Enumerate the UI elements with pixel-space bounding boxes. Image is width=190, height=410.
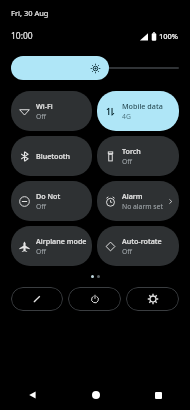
button[interactable]: Alarm — [97, 181, 179, 221]
staticText: Airplane mode — [36, 236, 87, 246]
staticText: Mobile data — [122, 101, 163, 111]
staticText: Alarm — [122, 191, 143, 201]
staticText: 10:00 — [11, 30, 33, 42]
staticText: Bluetooth — [36, 151, 71, 161]
staticText: 4G — [122, 112, 131, 121]
button[interactable]: Do Not Disturb — [11, 181, 92, 221]
staticText: Torch — [122, 146, 141, 156]
button[interactable]: Wi-Fi — [11, 91, 92, 131]
button[interactable]: Power — [68, 287, 121, 311]
button[interactable]: Brightness — [11, 56, 179, 80]
button[interactable]: Settings — [126, 287, 179, 311]
button[interactable]: Mobile data — [97, 91, 179, 131]
staticText: Off — [36, 112, 46, 121]
staticText: Off — [122, 247, 132, 256]
staticText: 100% — [159, 31, 179, 41]
staticText: Off — [122, 157, 132, 166]
button[interactable]: Recents — [127, 380, 190, 410]
button[interactable]: Airplane mode — [11, 226, 92, 266]
staticText: No alarm set — [122, 202, 163, 211]
button[interactable]: Edit — [11, 287, 63, 311]
staticText: Off — [36, 202, 46, 211]
button[interactable]: Bluetooth — [11, 136, 92, 176]
staticText: Do Not Disturb — [36, 191, 87, 201]
button[interactable]: Back — [0, 380, 64, 410]
button[interactable]: Auto-rotate — [97, 226, 179, 266]
button[interactable]: Home — [64, 380, 127, 410]
staticText: Off — [36, 247, 46, 256]
button[interactable]: Torch — [97, 136, 179, 176]
staticText: Fri, 30 Aug — [11, 8, 49, 18]
staticText: Wi-Fi — [36, 101, 53, 111]
staticText: Auto-rotate — [122, 236, 162, 246]
